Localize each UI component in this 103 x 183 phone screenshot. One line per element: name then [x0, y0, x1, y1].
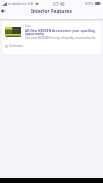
staticText: Interior Features	[31, 8, 72, 15]
staticText: 90%	[85, 1, 94, 7]
staticText: vodafone UK	[8, 1, 34, 7]
staticText: 3 minutes	[9, 44, 23, 48]
staticText: Our new NEXGEN line-up of quality access…	[25, 36, 96, 40]
staticText: 07:48	[53, 1, 65, 7]
staticText: opportunity	[25, 32, 45, 36]
button[interactable]: Sales	[2, 21, 101, 54]
staticText: All-New NEXGEN Accessories: your upselli…	[25, 29, 95, 33]
button[interactable]: Back	[0, 7, 7, 15]
staticText: Sales	[25, 24, 32, 28]
